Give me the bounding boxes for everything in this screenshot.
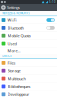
staticText: Storage	[8, 68, 21, 73]
button[interactable]: Developpeur	[0, 90, 57, 98]
staticText: Bluetooth	[8, 25, 24, 30]
button[interactable]: Storage	[0, 67, 57, 74]
staticText: Mobile Quota	[8, 33, 31, 38]
staticText: 5:10	[49, 0, 56, 4]
staticText: WIRELESS & NETWORKS	[2, 11, 29, 15]
button[interactable]: Bluetooth	[0, 24, 57, 32]
staticText: Bibliotheques	[8, 84, 31, 89]
staticText: Wi-Fi	[8, 17, 17, 23]
button[interactable]: More...	[0, 48, 57, 54]
button[interactable]: Settings	[0, 4, 57, 11]
staticText: Files	[8, 60, 16, 65]
button[interactable]: Files	[0, 59, 57, 67]
staticText: DEVICE	[2, 54, 11, 58]
staticText: Multitouch	[8, 76, 26, 81]
button[interactable]: Bibliotheques	[0, 83, 57, 90]
staticText: Developpeur	[8, 92, 30, 97]
button[interactable]: Multitouch	[0, 75, 57, 82]
button[interactable]: Used	[0, 40, 57, 47]
button[interactable]: Mobile Quota	[0, 32, 57, 39]
staticText: Settings	[7, 5, 20, 10]
button[interactable]: Wi-Fi	[0, 16, 57, 24]
staticText: More...	[8, 48, 21, 53]
staticText: Used	[8, 41, 17, 46]
